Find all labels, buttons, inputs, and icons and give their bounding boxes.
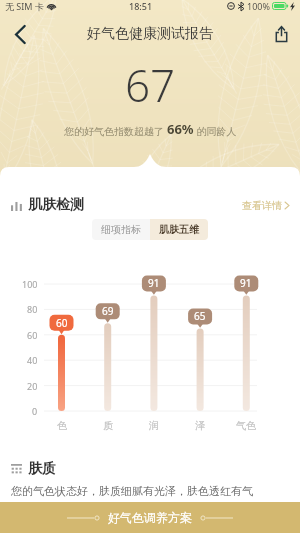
- staticText: 肤质: [28, 460, 56, 478]
- staticText: 67: [125, 55, 176, 115]
- button[interactable]: 肌肤五维: [150, 219, 208, 240]
- staticText: 您的好气色指数超越了: [64, 124, 167, 138]
- staticText: 润: [149, 419, 159, 432]
- staticText: 100: [22, 278, 38, 290]
- staticText: 肌肤检测: [28, 196, 84, 214]
- staticText: 您的气色状态好，肤质细腻有光泽，肤色透红有气 色，暗黄色素淡，肌肤水油平衡，肌肤…: [11, 484, 289, 516]
- staticText: 65: [194, 309, 206, 323]
- staticText: 气色: [236, 419, 256, 432]
- staticText: 色: [57, 419, 67, 432]
- staticText: 100%: [247, 0, 270, 12]
- button[interactable]: 好气色调养方案: [0, 502, 300, 533]
- staticText: 0: [32, 405, 38, 417]
- button[interactable]: 查看详情: [242, 199, 289, 212]
- staticText: 肌肤五维: [159, 223, 199, 236]
- staticText: 查看详情: [242, 199, 282, 212]
- staticText: 的同龄人: [194, 124, 237, 138]
- staticText: 66%: [167, 120, 194, 138]
- button[interactable]: 细项指标: [92, 219, 150, 240]
- staticText: 69: [102, 304, 114, 318]
- staticText: 细项指标: [101, 223, 141, 236]
- staticText: 40: [27, 354, 38, 366]
- staticText: 20: [27, 380, 38, 392]
- staticText: 91: [240, 276, 252, 290]
- staticText: 泽: [195, 419, 205, 432]
- staticText: 无 SIM 卡: [5, 0, 44, 12]
- staticText: 质: [103, 419, 113, 432]
- staticText: 18:51: [129, 0, 153, 12]
- button[interactable]: Share: [262, 18, 300, 50]
- staticText: 60: [56, 316, 68, 330]
- staticText: 80: [27, 303, 38, 315]
- staticText: 60: [27, 329, 38, 341]
- staticText: 91: [148, 276, 160, 290]
- button[interactable]: Back: [0, 18, 40, 50]
- staticText: 好气色调养方案: [108, 510, 192, 525]
- staticText: 好气色健康测试报告: [87, 25, 213, 43]
